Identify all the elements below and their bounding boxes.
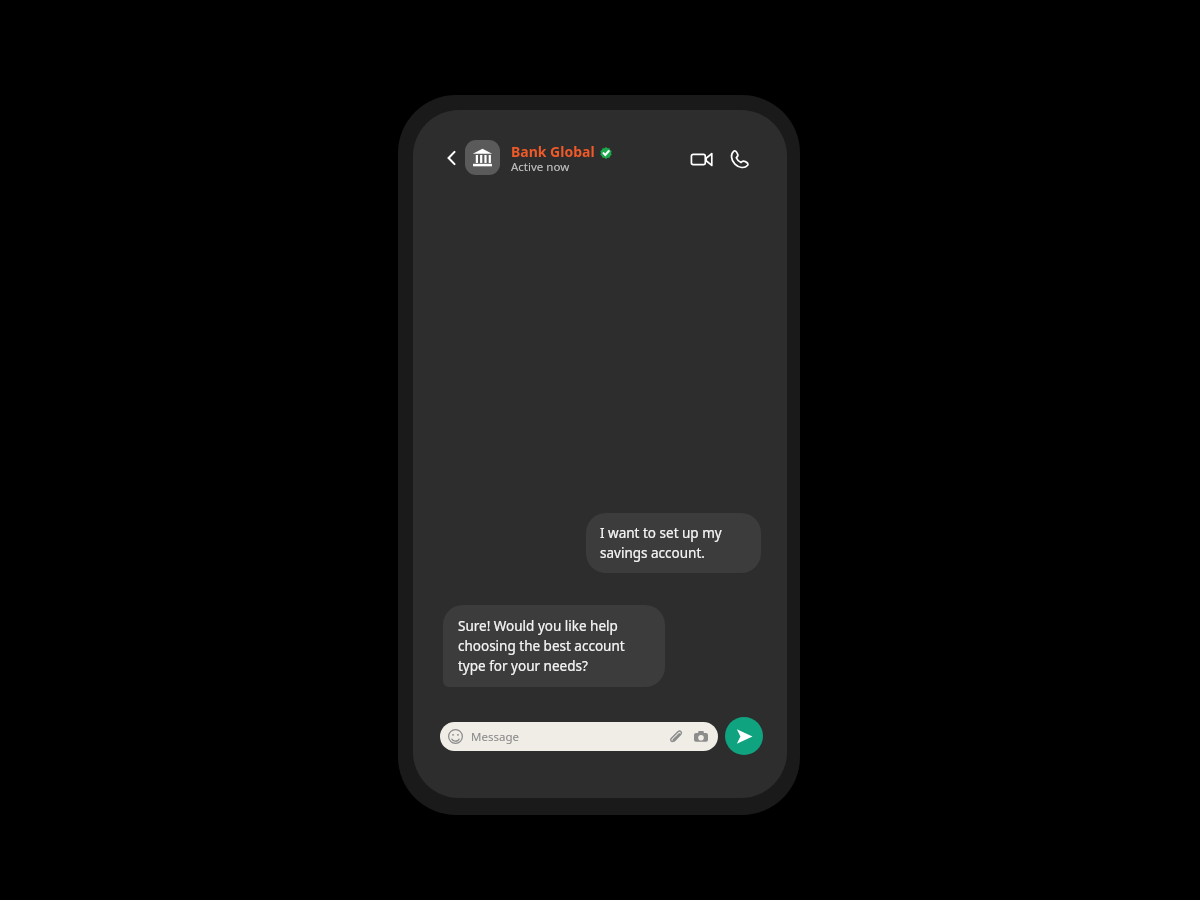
button[interactable]: Message <box>440 722 718 751</box>
staticText: Message <box>471 729 519 745</box>
button[interactable]: Bank Global profile <box>465 140 500 175</box>
button[interactable]: Send message <box>725 717 763 755</box>
button[interactable]: I want to set up my savings account. <box>586 513 761 573</box>
button[interactable]: Video call <box>685 143 717 175</box>
button[interactable]: Sure! Would you like help choosing the b… <box>443 605 665 687</box>
staticText: Bank Global <box>511 142 595 161</box>
button[interactable]: Camera <box>692 728 710 746</box>
button[interactable]: Voice call <box>723 143 755 175</box>
staticText: Sure! Would you like help choosing the b… <box>458 617 650 675</box>
button[interactable]: Attach file <box>667 728 685 746</box>
button[interactable]: Back <box>437 143 467 173</box>
staticText: I want to set up my savings account. <box>600 524 747 562</box>
staticText: Active now <box>511 159 570 175</box>
